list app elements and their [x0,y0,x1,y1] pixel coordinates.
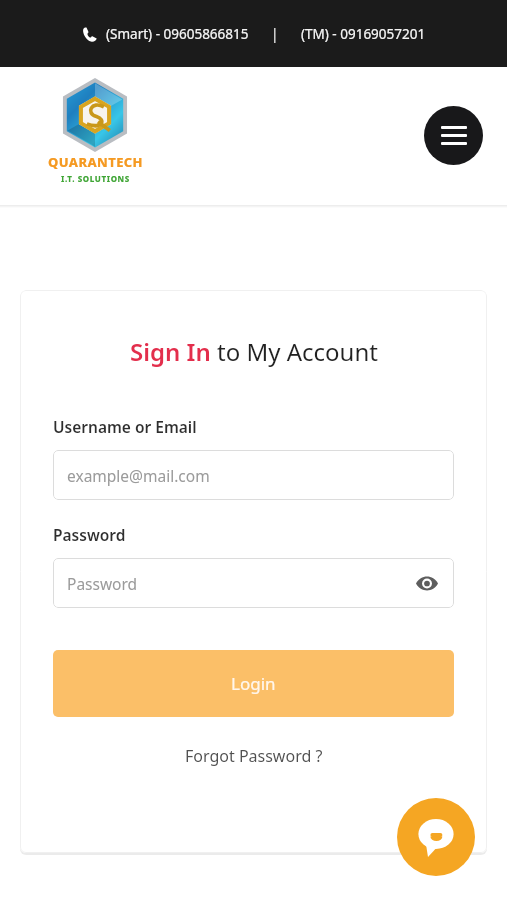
button[interactable]: Show password [414,570,440,596]
button[interactable]: QUARANTECH [34,78,156,190]
staticText: (Smart) - 09605866815 [106,25,249,43]
staticText: Login [231,672,276,695]
button[interactable]: Menu [424,106,483,165]
staticText: I.T. SOLUTIONS [61,173,130,184]
staticText: (TM) - 09169057201 [301,25,426,43]
staticText: | [271,25,279,43]
button[interactable]: Password [53,558,454,608]
button[interactable]: Open chat [397,798,475,876]
staticText: Username or Email [53,416,197,437]
other: Phone [82,27,97,42]
staticText: Password [67,573,414,594]
button[interactable]: Login [53,650,454,717]
staticText: example@mail.com [67,465,440,486]
staticText: Forgot Password ? [185,745,323,767]
staticText: QUARANTECH [48,153,143,171]
button[interactable]: example@mail.com [53,450,454,500]
staticText: Password [53,524,126,545]
staticText: Sign In to My Account [130,335,378,368]
button[interactable]: Forgot Password ? [53,745,454,767]
